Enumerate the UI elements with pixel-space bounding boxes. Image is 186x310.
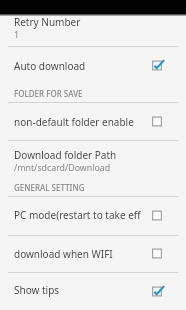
staticText: download when WIFI [14,247,113,261]
button[interactable]: non-default folder enable [145,112,169,132]
staticText: PC mode(restart to take effect) [14,208,141,222]
button[interactable]: Retry Number [0,14,186,46]
button[interactable]: PC mode(restart to take effect) [0,197,186,235]
staticText: Download folder Path [14,148,117,162]
button[interactable]: non-default folder enable [0,103,186,140]
button[interactable]: Auto download [145,56,169,76]
button[interactable]: Auto download [0,47,186,84]
button[interactable]: PC mode(restart to take effect) [145,206,169,226]
staticText: /mnt/sdcard/Download [14,162,111,174]
button[interactable]: Show tips [145,282,169,302]
staticText: FOLDER FOR SAVE [14,88,83,99]
button[interactable]: download when WIFI [0,236,186,272]
staticText: Retry Number [14,15,81,29]
button[interactable]: Show tips [0,273,186,310]
staticText: Auto download [14,59,86,73]
staticText: non-default folder enable [14,115,134,129]
button[interactable]: download when WIFI [145,244,169,264]
staticText: 1 [14,29,20,41]
button[interactable]: Download folder Path [0,141,186,178]
staticText: Show tips [14,283,60,297]
staticText: GENERAL SETTING [14,182,85,193]
